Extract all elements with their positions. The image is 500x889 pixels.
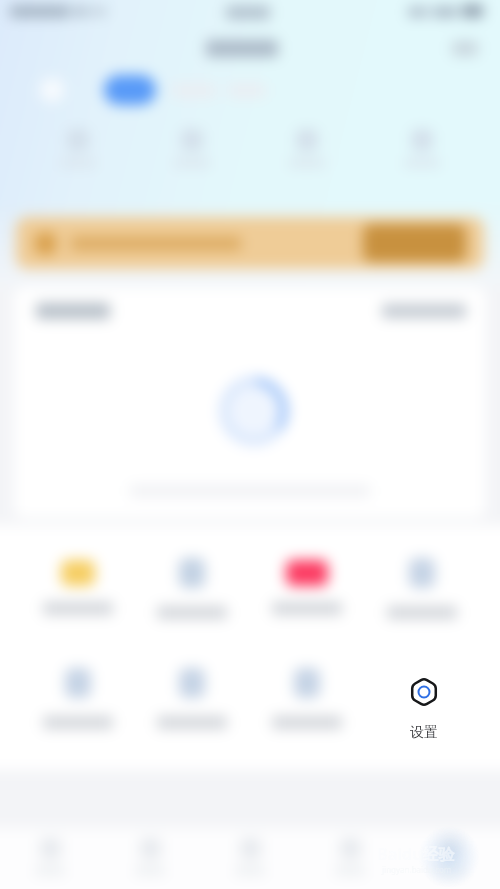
button[interactable]: Avatar [40,78,64,102]
button[interactable] [200,828,300,889]
button[interactable]: More [452,41,478,56]
button[interactable] [249,558,364,642]
button[interactable] [400,828,500,889]
button[interactable] [0,828,100,889]
button[interactable] [135,114,249,178]
button[interactable] [104,75,156,105]
button[interactable] [364,558,479,642]
button[interactable] [21,668,135,752]
staticText: 设置 [410,724,438,742]
button[interactable] [249,668,364,752]
button[interactable] [135,668,249,752]
staticText: jingyan.baidu.com [382,864,452,875]
button[interactable] [16,217,484,269]
button[interactable] [21,558,135,642]
staticText: Baidu经验 [377,843,455,865]
button[interactable] [363,224,466,262]
button[interactable] [135,558,249,642]
button[interactable] [364,114,479,178]
button[interactable] [249,114,364,178]
button[interactable] [100,828,200,889]
button[interactable] [364,668,479,752]
button[interactable]: 设置 [369,639,479,758]
button[interactable] [382,304,466,318]
button[interactable] [300,828,400,889]
button[interactable] [21,114,135,178]
